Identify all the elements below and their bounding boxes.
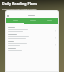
button[interactable]: More options xyxy=(54,29,56,31)
button[interactable]: More options xyxy=(54,43,56,45)
button[interactable]: More options xyxy=(8,26,56,33)
button[interactable] xyxy=(24,18,41,23)
button[interactable] xyxy=(6,18,24,23)
staticText: Open-and-read reading plans xyxy=(2,7,37,10)
staticText: Daily Reading Plans xyxy=(2,1,38,6)
button[interactable] xyxy=(8,47,56,52)
button[interactable]: More options xyxy=(8,40,56,47)
button[interactable] xyxy=(41,18,58,23)
button[interactable]: Open navigation menu xyxy=(7,15,9,17)
button[interactable]: More options xyxy=(8,33,56,40)
button[interactable]: More options xyxy=(54,36,56,38)
